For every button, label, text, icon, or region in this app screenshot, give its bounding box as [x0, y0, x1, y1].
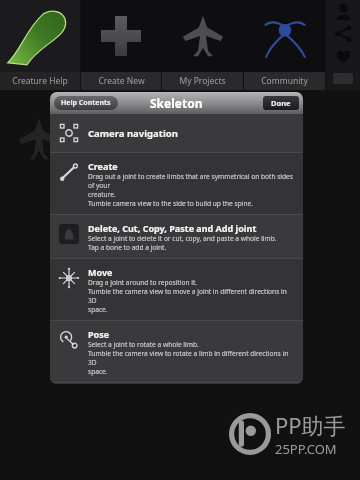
button[interactable]: Share	[326, 22, 360, 44]
staticText: creature.	[88, 190, 116, 199]
staticText: Create	[88, 160, 118, 172]
button[interactable]: Done	[263, 96, 299, 110]
staticText: 25PP.COM	[275, 440, 337, 458]
button[interactable]: Create	[50, 153, 303, 214]
staticText: Select a joint to rotate a whole limb.	[88, 340, 199, 349]
button[interactable]: Creature Help	[0, 0, 80, 90]
staticText: space.	[88, 305, 108, 314]
staticText: Drag out a joint to create limbs that ar…	[88, 172, 295, 190]
staticText: Camera navigation	[88, 127, 178, 140]
button[interactable]: Move	[50, 259, 303, 320]
staticText: Skeleton	[150, 95, 203, 111]
button[interactable]: Shape	[50, 383, 303, 384]
button[interactable]: More	[326, 67, 360, 90]
button[interactable]: Camera navigation	[50, 114, 303, 152]
staticText: Tap a bone to add a joint.	[88, 243, 167, 252]
staticText: Tumble the camera view to move a joint i…	[88, 287, 295, 305]
staticText: Pose	[88, 328, 110, 340]
button[interactable]: Create New	[81, 0, 161, 90]
button[interactable]: Delete, Cut, Copy, Paste and Add joint	[50, 215, 303, 258]
staticText: Done	[271, 98, 291, 108]
button[interactable]: My Projects	[162, 0, 243, 90]
staticText: Select a joint to delete it or cut, copy…	[88, 234, 277, 243]
staticText: space.	[88, 367, 108, 376]
staticText: Creature Help	[12, 75, 68, 87]
button[interactable]: Community	[244, 0, 325, 90]
button[interactable]: Account	[326, 0, 360, 22]
staticText: Drag a joint around to reposition it.	[88, 278, 198, 287]
button[interactable]: Help Contents	[54, 96, 118, 110]
button[interactable]: Pose	[50, 321, 303, 382]
staticText: My Projects	[179, 75, 226, 87]
staticText: Tumble camera view to the side to build …	[88, 199, 253, 208]
staticText: PP助手	[275, 410, 346, 440]
staticText: Help Contents	[61, 98, 111, 108]
staticText: Delete, Cut, Copy, Paste and Add joint	[88, 222, 257, 234]
staticText: Move	[88, 266, 113, 278]
staticText: Tumble the camera view to rotate a limb …	[88, 349, 295, 367]
button[interactable]: Favorites	[326, 44, 360, 67]
staticText: Community	[261, 75, 308, 87]
staticText: Create New	[98, 75, 145, 87]
